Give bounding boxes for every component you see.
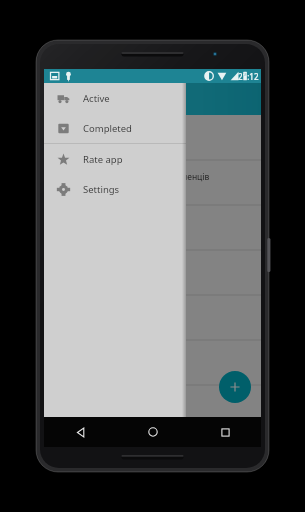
staticText: Active: [87, 91, 121, 107]
staticText: Settings: [83, 183, 120, 196]
button[interactable]: Recent apps: [189, 417, 261, 447]
button[interactable]: Active: [44, 83, 186, 113]
staticText: Active: [83, 92, 110, 105]
staticText: ненців: [182, 171, 210, 183]
button[interactable]: Back: [44, 417, 117, 447]
button[interactable]: Home: [117, 417, 189, 447]
button[interactable]: Completed: [44, 113, 186, 143]
staticText: Rate app: [83, 153, 123, 166]
button[interactable]: Settings: [44, 174, 186, 204]
staticText: 21:12: [238, 71, 259, 82]
button[interactable]: Add: [219, 371, 251, 403]
button[interactable]: Back: [44, 83, 78, 115]
staticText: Completed: [83, 122, 132, 135]
button[interactable]: Rate app: [44, 144, 186, 174]
